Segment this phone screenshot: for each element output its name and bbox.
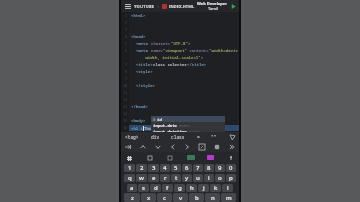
button[interactable]: d	[150, 184, 161, 192]
button[interactable]: Right	[183, 143, 191, 151]
button[interactable]: input-date	[153, 122, 223, 128]
button[interactable]: 4	[160, 164, 170, 172]
button[interactable]: Status	[187, 155, 195, 160]
staticText: 14	[123, 111, 128, 116]
button[interactable]: 0	[226, 164, 236, 172]
button[interactable]: e	[148, 174, 159, 182]
button[interactable]: 1	[124, 164, 135, 172]
button[interactable]: ""	[210, 134, 218, 140]
button[interactable]: Menu	[123, 2, 132, 11]
button[interactable]: #	[153, 116, 223, 122]
button[interactable]: Tab	[124, 143, 132, 151]
button[interactable]: l	[222, 184, 233, 192]
staticText: INDEX.HTML	[169, 4, 195, 9]
staticText: l	[227, 184, 229, 192]
button[interactable]: u	[193, 174, 203, 182]
staticText: class selector	[153, 62, 187, 67]
staticText: class	[171, 134, 185, 140]
button[interactable]: More	[228, 143, 236, 151]
button[interactable]: 5	[171, 164, 181, 172]
button[interactable]: Theme	[207, 155, 214, 160]
staticText: <title>	[131, 62, 153, 67]
staticText: s	[142, 184, 145, 192]
button[interactable]: g	[174, 184, 185, 192]
button[interactable]: 2	[136, 164, 147, 172]
button[interactable]: 8	[204, 164, 214, 172]
staticText: 4	[125, 34, 128, 39]
staticText: charset=	[151, 41, 171, 46]
staticText: event	[179, 123, 190, 128]
button[interactable]: Command	[213, 143, 221, 151]
button[interactable]: m	[221, 193, 236, 202]
button[interactable]: j	[198, 184, 209, 192]
button[interactable]: Clipboard	[146, 154, 154, 162]
button[interactable]: div	[150, 134, 161, 140]
staticText: x	[147, 194, 151, 202]
staticText: o	[218, 174, 222, 182]
staticText: This is id selector for css	[144, 126, 209, 131]
staticText: m	[226, 194, 232, 202]
staticText: input-datetime	[153, 129, 187, 134]
staticText: #	[153, 117, 156, 122]
staticText: 12	[123, 97, 128, 102]
staticText: event	[182, 135, 193, 140]
button[interactable]: z	[124, 193, 140, 202]
button[interactable]: p	[226, 174, 236, 182]
button[interactable]: Left	[169, 143, 177, 151]
button[interactable]: input-datetime	[153, 128, 223, 134]
button[interactable]: r	[160, 174, 170, 182]
button[interactable]: 6	[182, 164, 192, 172]
staticText: "viewport"	[163, 48, 187, 53]
staticText: 7	[196, 164, 200, 172]
button[interactable]: Sticker	[166, 154, 174, 162]
button[interactable]: y	[182, 174, 192, 182]
button[interactable]: <tag>	[124, 134, 140, 140]
staticText: 10	[123, 83, 128, 88]
button[interactable]: v	[173, 193, 188, 202]
staticText: g	[178, 184, 182, 192]
button[interactable]: Send	[228, 133, 236, 141]
button[interactable]: f	[162, 184, 173, 192]
staticText: i	[208, 174, 210, 182]
button[interactable]: b	[189, 193, 204, 202]
staticText: 6	[185, 164, 189, 172]
button[interactable]: o	[215, 174, 225, 182]
button[interactable]: a	[127, 184, 137, 192]
button[interactable]: 3	[148, 164, 159, 172]
button[interactable]: n	[205, 193, 220, 202]
staticText: 3	[125, 27, 128, 32]
button[interactable]: Run	[230, 3, 237, 10]
staticText: width, initial-scale=1"	[131, 55, 201, 60]
staticText: y	[185, 174, 189, 182]
staticText: 5	[174, 164, 178, 172]
button[interactable]: q	[124, 174, 135, 182]
button[interactable]: Up	[139, 143, 147, 151]
button[interactable]: Voice input	[227, 154, 235, 162]
button[interactable]: 9	[215, 164, 225, 172]
button[interactable]: k	[210, 184, 221, 192]
staticText: u	[196, 174, 200, 182]
button[interactable]: h	[186, 184, 197, 192]
button[interactable]: =	[196, 134, 201, 140]
button[interactable]: s	[138, 184, 149, 192]
staticText: <h1 i	[131, 126, 143, 131]
button[interactable]: Select all	[198, 143, 206, 151]
staticText: j	[203, 184, 205, 192]
staticText: >	[188, 41, 191, 46]
staticText: input-date	[153, 123, 177, 128]
button[interactable]: c	[157, 193, 172, 202]
button[interactable]: Keyboard layouts	[125, 154, 133, 162]
button[interactable]: 7	[193, 164, 203, 172]
button[interactable]: i	[204, 174, 214, 182]
button[interactable]: x	[141, 193, 156, 202]
staticText: 15	[123, 118, 128, 123]
staticText: e	[152, 174, 156, 182]
button[interactable]: t	[171, 174, 181, 182]
button[interactable]: input-email	[153, 134, 223, 140]
button[interactable]: w	[136, 174, 147, 182]
button[interactable]: Down	[154, 143, 162, 151]
staticText: </title>	[187, 62, 207, 67]
button[interactable]: class	[170, 134, 186, 140]
